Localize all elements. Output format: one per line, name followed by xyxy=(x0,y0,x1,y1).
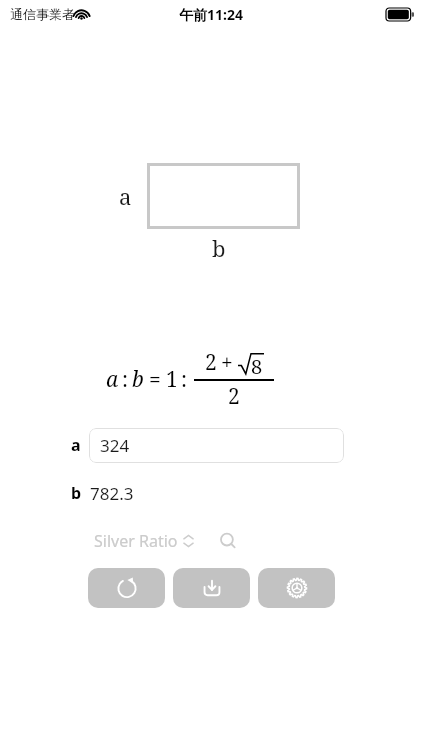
button[interactable]: Settings xyxy=(258,568,335,608)
staticText: 324 xyxy=(100,434,130,457)
staticText: 2 xyxy=(205,348,217,377)
staticText: 8 xyxy=(251,353,263,380)
staticText: a xyxy=(71,434,81,456)
staticText: Silver Ratio xyxy=(94,530,178,552)
staticText: b xyxy=(212,233,226,263)
staticText: = xyxy=(149,365,161,394)
staticText: b xyxy=(71,482,82,504)
staticText: 通信事業者 xyxy=(10,6,75,22)
button[interactable]: Save xyxy=(173,568,250,608)
button[interactable]: Search xyxy=(215,528,241,554)
staticText: a xyxy=(119,181,132,211)
button[interactable]: Refresh xyxy=(88,568,165,608)
staticText: : xyxy=(122,365,129,394)
staticText: 午前11:24 xyxy=(179,5,243,24)
staticText: : xyxy=(181,365,188,394)
staticText: 782.3 xyxy=(90,482,134,505)
staticText: 2 xyxy=(228,382,240,410)
button[interactable]: 324 xyxy=(89,428,344,463)
staticText: b xyxy=(132,365,144,394)
button[interactable]: Silver Ratio xyxy=(94,530,194,552)
staticText: a xyxy=(106,365,119,394)
staticText: + xyxy=(221,348,233,377)
staticText: 1 xyxy=(166,365,178,394)
